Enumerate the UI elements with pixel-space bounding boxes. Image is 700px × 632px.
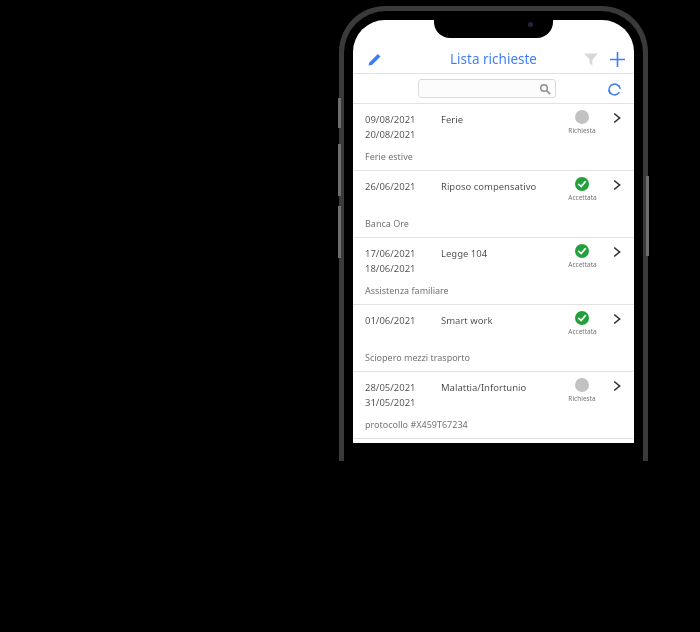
- staticText: Malattia/Infortunio: [441, 381, 558, 394]
- staticText: Richiesta: [568, 126, 596, 135]
- staticText: Sciopero mezzi trasporto: [365, 351, 471, 363]
- staticText: 20/08/2021: [365, 128, 416, 141]
- staticText: Ferie: [441, 113, 558, 126]
- staticText: 28/05/2021: [365, 381, 416, 394]
- staticText: 17/06/2021: [365, 247, 416, 260]
- staticText: 01/06/2021: [365, 314, 416, 327]
- button[interactable]: Filtra: [578, 46, 604, 72]
- button[interactable]: 01/06/2021: [353, 305, 634, 371]
- staticText: Accettata: [568, 327, 597, 336]
- button[interactable]: 09/08/2021: [353, 104, 634, 170]
- button[interactable]: Aggiungi: [604, 46, 630, 72]
- staticText: Smart work: [441, 314, 558, 327]
- button[interactable]: 17/06/2021: [353, 238, 634, 304]
- staticText: Lista richieste: [450, 50, 537, 68]
- staticText: 31/05/2021: [365, 396, 416, 409]
- button[interactable]: Cerca: [418, 79, 556, 98]
- staticText: 26/06/2021: [365, 180, 416, 193]
- button[interactable]: Modifica: [362, 47, 386, 71]
- staticText: Accettata: [568, 260, 597, 269]
- staticText: 18/06/2021: [365, 262, 416, 275]
- staticText: Richiesta: [568, 394, 596, 403]
- button[interactable]: Aggiorna: [602, 77, 626, 101]
- staticText: 09/08/2021: [365, 113, 416, 126]
- staticText: Ferie estive: [365, 150, 413, 162]
- staticText: Accettata: [568, 193, 597, 202]
- button[interactable]: 26/06/2021: [353, 171, 634, 237]
- button[interactable]: 28/05/2021: [353, 372, 634, 438]
- staticText: protocollo #X459T67234: [365, 418, 468, 430]
- staticText: Assistenza familiare: [365, 284, 449, 296]
- staticText: Legge 104: [441, 247, 558, 260]
- staticText: Banca Ore: [365, 217, 409, 229]
- staticText: Riposo compensativo: [441, 180, 558, 193]
